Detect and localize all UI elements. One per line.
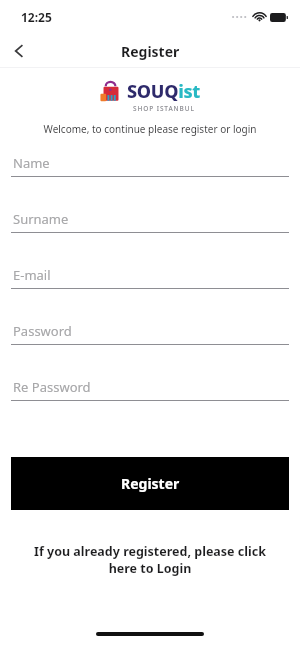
button[interactable]: Password	[11, 318, 289, 374]
button[interactable]: Back	[0, 34, 38, 68]
staticText: Register	[121, 474, 180, 493]
staticText: Surname	[13, 210, 69, 228]
button[interactable]: Name	[11, 150, 289, 206]
button[interactable]: E-mail	[11, 262, 289, 318]
staticText: Register	[121, 42, 180, 61]
button[interactable]: If you already registered, please click …	[0, 543, 300, 577]
staticText: Password	[13, 322, 72, 340]
button[interactable]: Register	[11, 457, 289, 510]
staticText: 12:25	[21, 9, 52, 25]
button[interactable]: Surname	[11, 206, 289, 262]
staticText: SHOP ISTANBUL	[133, 104, 195, 113]
staticText: E-mail	[13, 266, 51, 284]
staticText: Welcome, to continue please register or …	[0, 122, 300, 136]
staticText: Re Password	[13, 378, 91, 396]
staticText: SOUQist	[127, 79, 201, 104]
button[interactable]: Re Password	[11, 374, 289, 430]
staticText: Name	[13, 154, 50, 172]
